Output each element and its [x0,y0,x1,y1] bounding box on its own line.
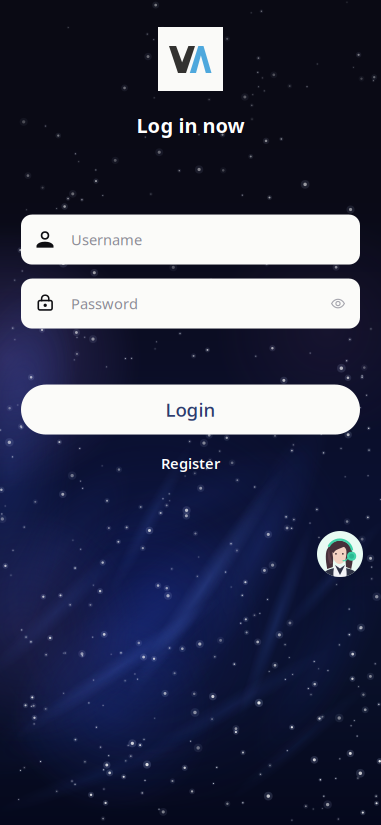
staticText: Register [161,454,220,473]
staticText: Log in now [136,112,244,139]
button[interactable]: Customer support [317,531,363,577]
staticText: Login [165,397,215,422]
staticText: Password [71,294,138,313]
button[interactable]: Password [21,279,360,329]
button[interactable]: Register [149,448,232,479]
staticText: Username [71,230,142,249]
button[interactable]: Login [21,385,360,435]
button[interactable]: Username [21,215,360,265]
